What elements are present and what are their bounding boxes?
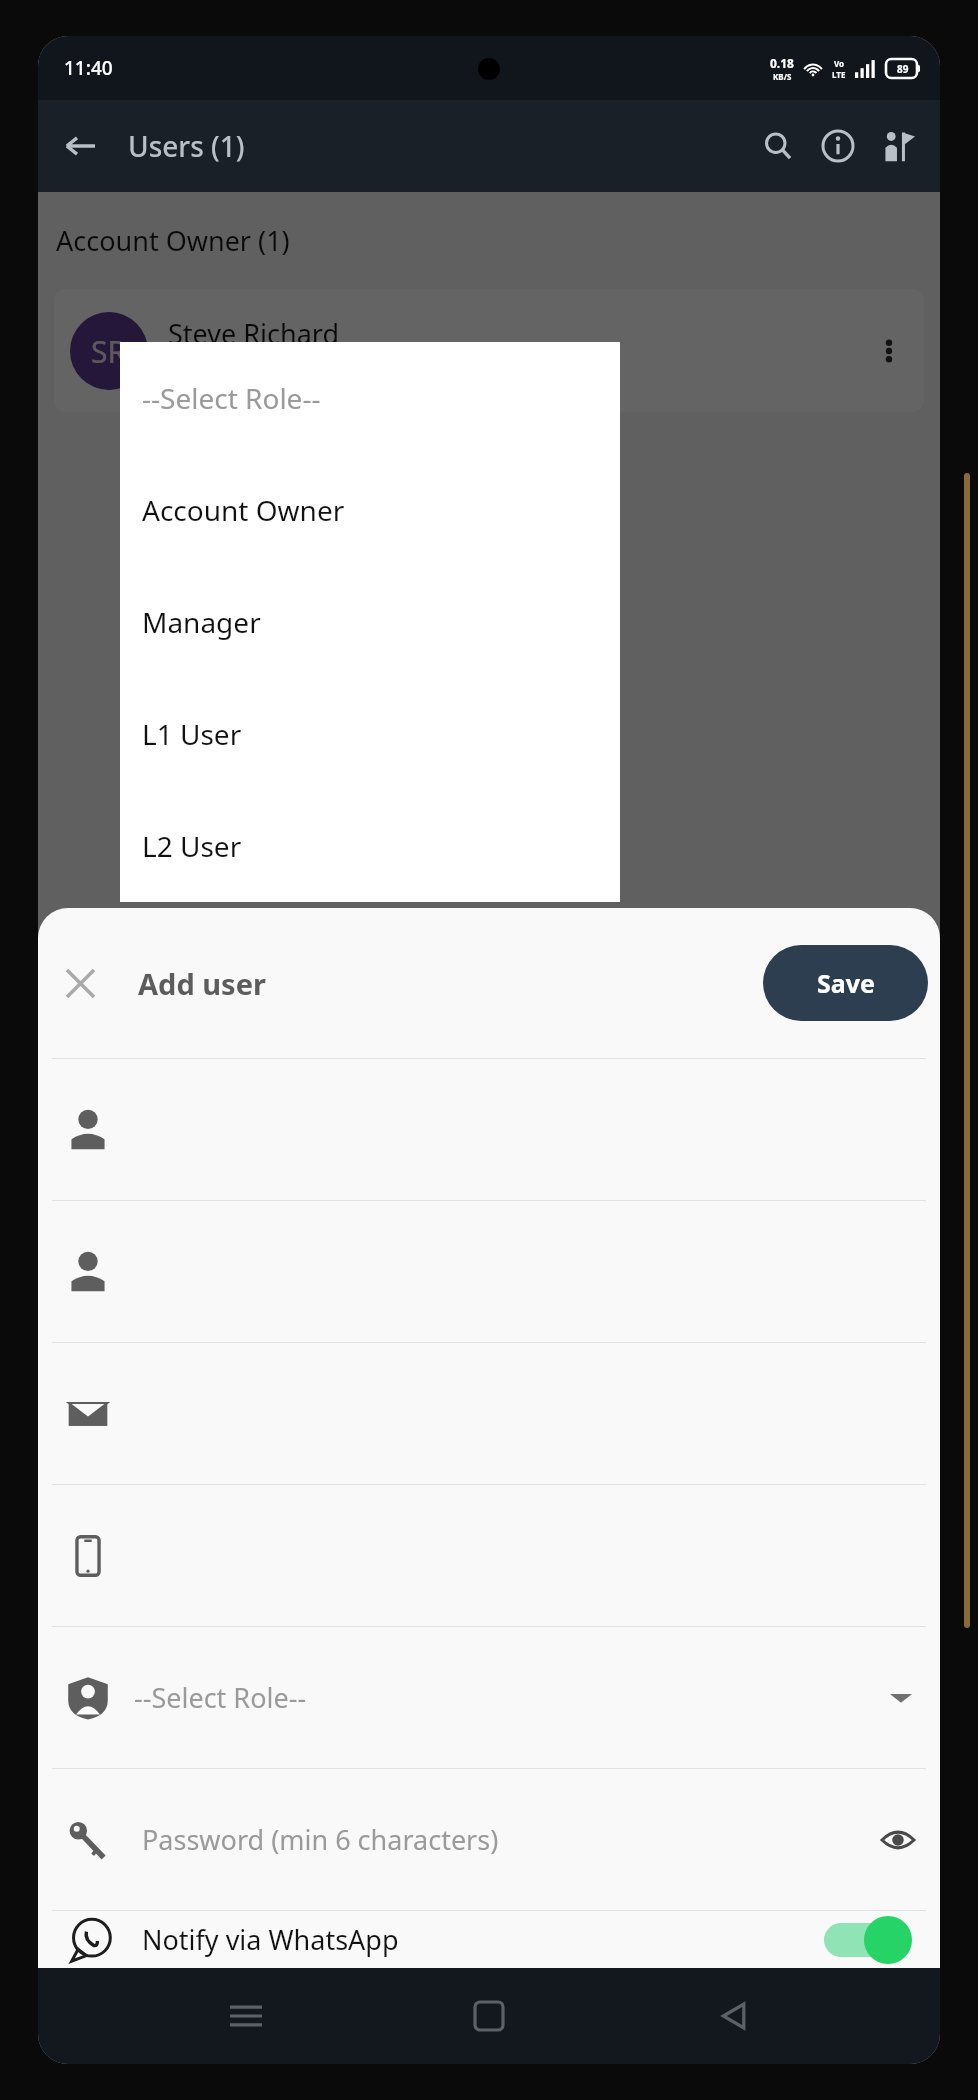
button[interactable]: More options <box>864 326 914 376</box>
staticText: Users (1) <box>128 127 748 165</box>
button[interactable]: L2 User <box>120 790 620 902</box>
button[interactable] <box>52 1201 926 1342</box>
staticText: SR <box>91 331 127 372</box>
button[interactable]: Show password <box>870 1812 926 1868</box>
staticText: Account Owner <box>142 491 345 529</box>
button[interactable]: Information <box>808 116 868 176</box>
staticText: 11:40 <box>64 55 113 81</box>
button[interactable]: --Select Role-- <box>120 342 620 454</box>
button[interactable]: Search <box>748 116 808 176</box>
button[interactable]: Back <box>697 1980 769 2052</box>
button[interactable]: L1 User <box>120 678 620 790</box>
button[interactable]: Close <box>50 953 110 1013</box>
staticText: LTE <box>832 69 846 80</box>
staticText: KB/S <box>773 71 792 82</box>
button[interactable] <box>52 1485 926 1626</box>
button[interactable]: Add user <box>868 116 928 176</box>
staticText: Add user <box>138 964 266 1003</box>
button[interactable]: Save <box>763 945 928 1021</box>
button[interactable]: SR <box>54 289 924 412</box>
staticText: --Select Role-- <box>142 379 321 417</box>
button[interactable] <box>52 1343 926 1484</box>
staticText: Save <box>817 966 875 1000</box>
staticText: Steve Richard <box>168 315 339 352</box>
staticText: Vo <box>834 58 845 69</box>
staticText: 89 <box>897 62 909 76</box>
button[interactable]: Notify via WhatsApp <box>52 1911 926 1968</box>
button[interactable]: --Select Role-- <box>52 1627 926 1768</box>
staticText: L2 User <box>142 827 242 865</box>
button[interactable]: Back <box>52 118 108 174</box>
staticText: Password (min 6 characters) <box>142 1821 870 1858</box>
button[interactable]: Home <box>453 1980 525 2052</box>
button[interactable] <box>52 1059 926 1200</box>
button[interactable]: Recent apps <box>210 1980 282 2052</box>
staticText: 0.18 <box>770 55 794 71</box>
button[interactable]: Password (min 6 characters) <box>52 1769 926 1910</box>
staticText: Account Owner (1) <box>56 222 290 259</box>
staticText: Notify via WhatsApp <box>142 1921 820 1958</box>
staticText: L1 User <box>142 715 242 753</box>
button[interactable]: Account Owner <box>120 454 620 566</box>
staticText: Manager <box>142 603 261 641</box>
staticText: --Select Role-- <box>134 1679 890 1716</box>
button[interactable]: Manager <box>120 566 620 678</box>
